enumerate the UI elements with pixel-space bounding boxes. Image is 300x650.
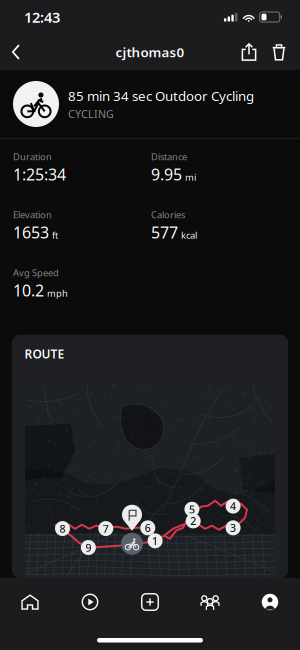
staticText: mph	[47, 287, 68, 299]
staticText: 1:25:34	[13, 164, 66, 185]
button[interactable]: Add	[120, 584, 180, 620]
staticText: 1	[152, 534, 158, 548]
staticText: 2	[190, 514, 196, 528]
staticText: ROUTE	[24, 346, 64, 362]
staticText: 3	[230, 521, 236, 535]
staticText: 5	[189, 502, 195, 516]
staticText: 8	[59, 521, 65, 536]
staticText: Elevation	[13, 208, 52, 221]
button[interactable]: Share	[234, 37, 264, 67]
staticText: Calories	[151, 208, 185, 221]
staticText: cjthomas0	[115, 43, 184, 61]
button[interactable]: Delete	[264, 37, 294, 67]
staticText: 7	[103, 521, 109, 536]
staticText: ft	[52, 229, 58, 241]
staticText: 1653	[13, 222, 49, 243]
staticText: 577	[151, 222, 178, 243]
staticText: Distance	[151, 150, 187, 163]
staticText: 85 min 34 sec Outdoor Cycling	[68, 87, 254, 105]
staticText: kcal	[181, 229, 197, 241]
staticText: 10.2	[13, 280, 44, 301]
staticText: Duration	[13, 150, 52, 163]
staticText: mi	[185, 171, 196, 183]
staticText: 9	[85, 540, 91, 555]
button[interactable]: Media	[60, 584, 120, 620]
button[interactable]: Back	[2, 37, 30, 67]
staticText: 4	[230, 499, 236, 513]
staticText: 6	[145, 521, 151, 535]
staticText: 9.95	[151, 164, 182, 185]
staticText: 12:43	[24, 7, 60, 27]
staticText: Avg Speed	[13, 266, 59, 279]
button[interactable]: Groups	[180, 584, 240, 620]
button[interactable]: Home	[0, 584, 60, 620]
button[interactable]: Profile	[240, 584, 300, 620]
staticText: CYCLING	[68, 107, 114, 121]
